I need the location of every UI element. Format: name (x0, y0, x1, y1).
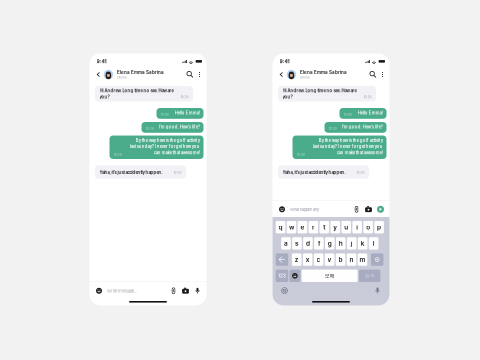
staticText: 10:29 (297, 153, 305, 157)
button[interactable]: Camera (363, 202, 374, 216)
staticText: s (295, 239, 299, 247)
staticText: 10:29 (146, 127, 154, 130)
staticText: Hello Emma! (357, 110, 382, 115)
button[interactable]: k (358, 237, 368, 250)
staticText: a (284, 239, 288, 247)
staticText: By the way how is the golf activity last… (312, 138, 382, 155)
button[interactable]: Emoji keyboard (289, 270, 300, 282)
button[interactable]: t (319, 221, 329, 233)
staticText: Elena Emma Sabrina (117, 70, 164, 75)
button[interactable]: z (292, 253, 302, 266)
button[interactable]: j (347, 237, 357, 250)
button[interactable]: u (341, 221, 351, 233)
button[interactable]: a (281, 237, 291, 250)
button[interactable]: Emoji (276, 202, 288, 216)
button[interactable]: Send (375, 202, 386, 216)
staticText: Haha, it's just accidently happen. (283, 170, 346, 175)
button[interactable]: Back (93, 66, 104, 82)
button[interactable]: 오해 (302, 270, 358, 282)
staticText: 검색 (365, 273, 375, 279)
button[interactable]: r (309, 221, 318, 233)
button[interactable]: m (358, 253, 367, 266)
button[interactable]: 123 (276, 270, 288, 282)
button[interactable]: Switch keyboard (276, 286, 292, 295)
button[interactable]: Dictate (369, 286, 385, 295)
staticText: f (318, 239, 320, 247)
staticText: I'm good. How's life? (158, 124, 199, 129)
staticText: u (344, 223, 348, 231)
staticText: 오해 (325, 272, 335, 279)
button[interactable]: p (374, 221, 384, 233)
staticText: x (306, 256, 310, 263)
staticText: o (366, 223, 370, 231)
button[interactable]: Search (367, 66, 378, 82)
button[interactable]: i (352, 221, 362, 233)
staticText: q (278, 223, 282, 231)
button[interactable]: o (363, 221, 373, 233)
button[interactable]: 검색 (359, 270, 380, 282)
staticText: By the way how is the golf activity last… (129, 138, 199, 155)
staticText: g (328, 239, 332, 247)
staticText: 10:00 (344, 113, 352, 116)
button[interactable]: Delete (371, 253, 383, 266)
staticText: Hi Andrew. Long time no see. How are you… (100, 88, 174, 99)
staticText: 10:29 (356, 171, 364, 174)
staticText: l (373, 239, 375, 247)
staticText: Hi Andrew. Long time no see. How are you… (283, 88, 357, 99)
staticText: z (295, 256, 299, 263)
staticText: p (377, 223, 381, 231)
staticText: m (359, 256, 365, 263)
button[interactable]: d (303, 237, 313, 250)
button[interactable]: g (325, 237, 335, 250)
staticText: Haha, it's just accidently happen. (100, 170, 163, 175)
button[interactable]: Search (184, 66, 195, 82)
staticText: 9:41 (279, 58, 289, 64)
button[interactable]: Back (276, 66, 287, 82)
staticText: n (349, 256, 353, 263)
staticText: r (312, 223, 315, 231)
button[interactable]: y (330, 221, 340, 233)
button[interactable]: v (325, 253, 334, 266)
button[interactable]: x (303, 253, 312, 266)
staticText: e (300, 223, 304, 231)
button[interactable]: More options (378, 66, 386, 82)
button[interactable]: Camera (180, 284, 191, 298)
button[interactable]: s (292, 237, 302, 250)
staticText: 10:00 (161, 113, 169, 116)
staticText: i (356, 223, 358, 231)
staticText: j (351, 239, 353, 247)
staticText: h (339, 239, 343, 247)
staticText: Elena Emma Sabrina (300, 70, 347, 75)
button[interactable]: b (336, 253, 345, 266)
staticText: I'm good. How's life? (341, 124, 382, 129)
button[interactable]: c (314, 253, 323, 266)
button[interactable]: q (276, 221, 285, 233)
button[interactable]: Emoji (93, 284, 105, 298)
staticText: What happen any (290, 207, 319, 212)
button[interactable]: l (369, 237, 378, 250)
staticText: v (328, 256, 332, 263)
staticText: Online (117, 75, 127, 79)
staticText: 10:29 (173, 171, 181, 174)
button[interactable]: Voice message (192, 284, 203, 298)
staticText: w (289, 223, 294, 231)
button[interactable]: h (336, 237, 346, 250)
staticText: d (306, 239, 310, 247)
staticText: 10:29 (114, 153, 122, 157)
staticText: 10:29 (180, 95, 188, 99)
staticText: 9:41 (96, 58, 106, 64)
staticText: Write message... (107, 289, 137, 293)
button[interactable]: Attach file (351, 202, 362, 216)
button[interactable]: More options (195, 66, 203, 82)
button[interactable]: n (347, 253, 356, 266)
staticText: c (317, 256, 321, 263)
button[interactable]: Shift (276, 253, 288, 266)
button[interactable]: w (287, 221, 296, 233)
staticText: 123 (278, 273, 286, 279)
button[interactable]: f (314, 237, 324, 250)
button[interactable]: Attach file (168, 284, 179, 298)
button[interactable]: e (298, 221, 307, 233)
staticText: Online (300, 75, 310, 79)
staticText: b (338, 256, 342, 263)
staticText: t (323, 223, 325, 231)
